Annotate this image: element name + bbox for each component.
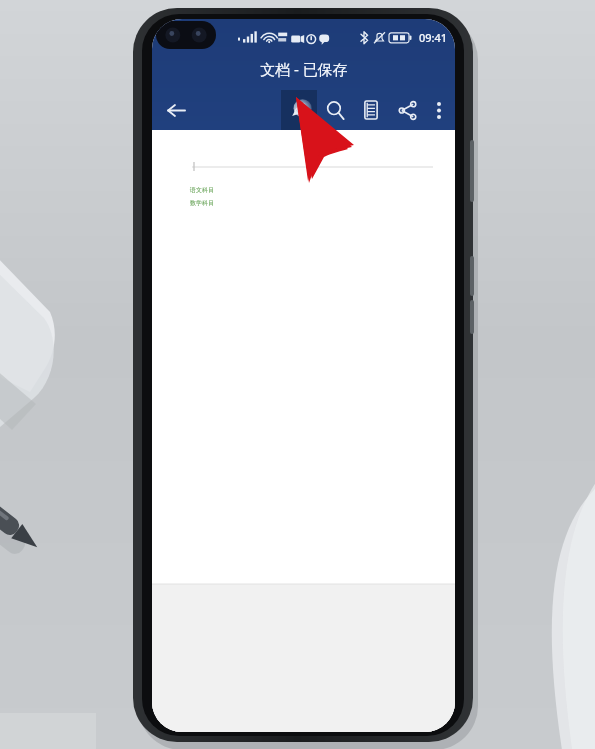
button[interactable]: More options	[425, 90, 453, 130]
button[interactable]: Pen	[281, 90, 317, 130]
staticText: 文档 - 已保存	[260, 59, 348, 79]
staticText: 语文科目	[190, 186, 214, 194]
button[interactable]: Back	[158, 92, 194, 128]
staticText: 09:41	[419, 30, 448, 45]
button[interactable]: Search	[317, 90, 353, 130]
button[interactable]: Share	[389, 90, 425, 130]
staticText: 数学科目	[190, 199, 214, 207]
button[interactable]: Document view	[353, 90, 389, 130]
